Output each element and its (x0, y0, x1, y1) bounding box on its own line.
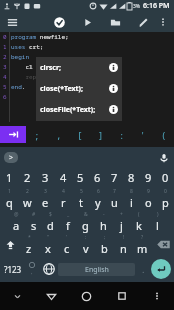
button[interactable]: close(*Text); (36, 78, 122, 99)
button[interactable]: Shift (0, 233, 20, 256)
button[interactable]: ( (153, 122, 174, 147)
button[interactable]: 9 (140, 168, 157, 187)
button[interactable]: Emoji (24, 256, 40, 282)
button[interactable]: 2 (18, 168, 36, 187)
button[interactable]: * (20, 233, 38, 256)
button[interactable]: 4 (54, 168, 72, 187)
button[interactable]: Edit (132, 12, 154, 32)
button[interactable]: 7 (106, 187, 123, 210)
staticText: d (47, 218, 54, 233)
button[interactable]: Home (69, 282, 104, 310)
button[interactable]: ] (90, 122, 111, 147)
button[interactable]: closeFile(*Text); (36, 99, 122, 120)
staticText: 3 (44, 188, 47, 195)
button[interactable]: Run (76, 12, 98, 32)
button[interactable]: Change language (40, 256, 58, 282)
button[interactable]: Info (109, 84, 118, 93)
button[interactable]: Backspace (152, 233, 174, 256)
button[interactable]: ! (114, 233, 133, 256)
button[interactable]: 5 (72, 168, 89, 187)
staticText: b (101, 241, 108, 256)
button[interactable]: Voice input (157, 151, 170, 164)
staticText: 0 (164, 188, 167, 195)
button[interactable]: 8 (123, 168, 140, 187)
button[interactable]: " (38, 233, 57, 256)
button[interactable]: 8 (123, 187, 140, 210)
button[interactable]: ) (148, 210, 166, 233)
button[interactable]: [ (69, 122, 90, 147)
button[interactable]: 6 (89, 187, 106, 210)
button[interactable]: + (112, 210, 130, 233)
button[interactable]: Menu (0, 12, 24, 32)
button[interactable]: 1 (0, 168, 18, 187)
button[interactable]: Tab (0, 126, 26, 143)
staticText: o (145, 195, 152, 210)
staticText: 1 (8, 188, 11, 195)
button[interactable]: @ (8, 210, 25, 233)
staticText: v (83, 241, 89, 256)
button[interactable]: Info (109, 105, 118, 114)
staticText: close(*Text); (40, 84, 83, 94)
button[interactable]: 9 (140, 187, 157, 210)
staticText: cl (11, 63, 33, 71)
button[interactable]: 0 (157, 187, 174, 210)
staticText: : (119, 129, 125, 141)
button[interactable]: Info (109, 63, 118, 72)
staticText: ?123 (4, 264, 22, 275)
button[interactable]: 2 (18, 187, 36, 210)
staticText: n (120, 241, 127, 256)
button[interactable]: & (76, 210, 94, 233)
button[interactable]: $ (42, 210, 59, 233)
button[interactable]: 1 (0, 187, 18, 210)
button[interactable]: Open folder (104, 12, 126, 32)
button[interactable]: _ (59, 210, 76, 233)
button[interactable]: ? (133, 233, 152, 256)
button[interactable]: Save (48, 12, 70, 32)
staticText: " (47, 234, 50, 241)
staticText: i (130, 195, 133, 210)
staticText: 5 (77, 170, 84, 185)
button[interactable]: 3 (36, 168, 54, 187)
button[interactable]: ; (95, 233, 114, 256)
staticText: end. (11, 83, 26, 91)
button[interactable]: 6 (89, 168, 106, 187)
button[interactable]: ( (130, 210, 148, 233)
staticText: 5 (80, 188, 83, 195)
button[interactable]: ?123 (2, 256, 24, 282)
button[interactable]: clrscr; (36, 57, 122, 78)
button[interactable]: 7 (106, 168, 123, 187)
staticText: 2 (26, 188, 29, 195)
button[interactable]: 3 (36, 187, 54, 210)
button[interactable]: - (94, 210, 112, 233)
button[interactable]: Enter (151, 259, 171, 279)
button[interactable]: Hide keyboard (0, 282, 34, 310)
staticText: , (31, 268, 33, 276)
staticText: 2 (3, 53, 7, 61)
button[interactable]: ' (132, 122, 153, 147)
button[interactable]: Recents (104, 282, 139, 310)
staticText: . (142, 263, 145, 275)
staticText: 6 (97, 188, 100, 195)
staticText: m (137, 241, 148, 256)
button[interactable]: ' (57, 233, 76, 256)
button[interactable]: More options (154, 13, 172, 31)
button[interactable]: More options (139, 282, 174, 310)
button[interactable]: 5 (72, 187, 89, 210)
button[interactable]: : (111, 122, 132, 147)
staticText: w (23, 195, 32, 210)
button[interactable]: # (25, 210, 42, 233)
button[interactable]: Expand suggestions (4, 152, 18, 163)
staticText: 6 (94, 170, 101, 185)
button[interactable]: ; (26, 122, 48, 147)
button[interactable]: : (76, 233, 95, 256)
button[interactable]: 4 (54, 187, 72, 210)
button[interactable]: , (48, 122, 69, 147)
button[interactable]: Back (34, 282, 69, 310)
staticText: q (6, 195, 13, 210)
staticText: c (64, 241, 70, 256)
staticText: 9 (145, 170, 152, 185)
button[interactable]: English (58, 263, 135, 276)
button[interactable]: 0 (157, 168, 174, 187)
staticText: u (111, 195, 118, 210)
